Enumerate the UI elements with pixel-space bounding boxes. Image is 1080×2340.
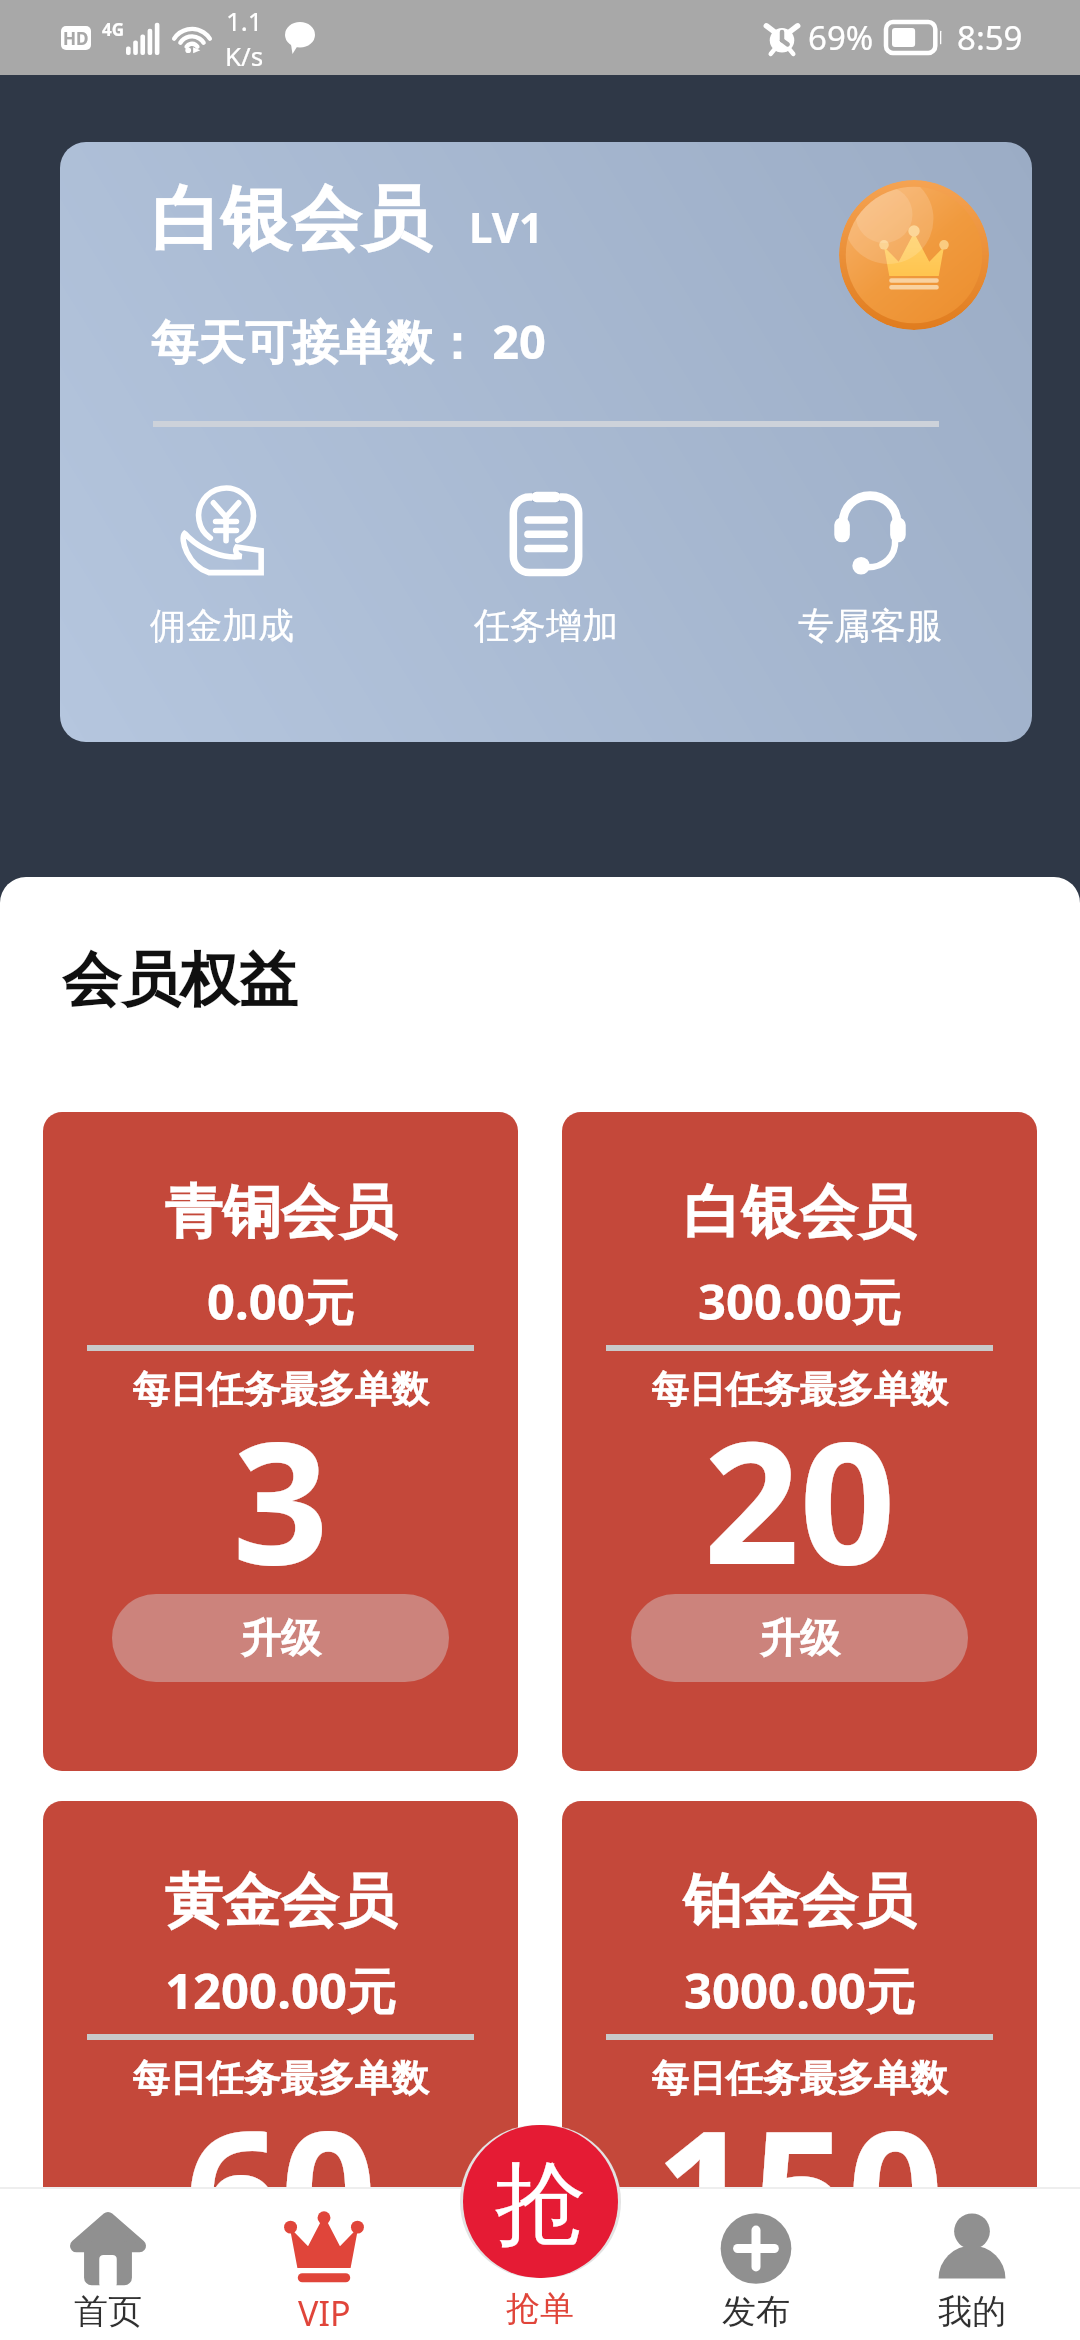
- button[interactable]: 发布: [648, 2187, 864, 2340]
- button[interactable]: 黄金会员: [43, 1801, 518, 2340]
- button[interactable]: 任务增加: [384, 487, 708, 648]
- staticText: 升级: [241, 1613, 321, 1663]
- button[interactable]: 升级: [112, 2283, 449, 2340]
- staticText: 会员权益: [62, 943, 298, 1017]
- staticText: 升级: [760, 1613, 840, 1663]
- staticText: 白银会员: [562, 1176, 1037, 1249]
- staticText: 首页: [74, 2290, 142, 2333]
- staticText: 每日任务最多单数: [43, 1366, 518, 1413]
- button[interactable]: 白银会员: [562, 1112, 1037, 1771]
- staticText: 升级: [760, 2302, 840, 2340]
- staticText: 青铜会员: [43, 1176, 518, 1249]
- button[interactable]: 我的: [864, 2187, 1080, 2340]
- staticText: 任务增加: [474, 603, 618, 648]
- button[interactable]: 首页: [0, 2187, 216, 2340]
- staticText: 专属客服: [798, 603, 942, 648]
- staticText: LV1: [469, 198, 543, 255]
- button[interactable]: 青铜会员: [43, 1112, 518, 1771]
- staticText: 每日任务最多单数: [562, 1366, 1037, 1413]
- staticText: HD: [63, 27, 89, 50]
- staticText: 3: [43, 1384, 518, 1613]
- staticText: 60: [43, 2073, 518, 2302]
- staticText: 抢单: [506, 2287, 574, 2330]
- button[interactable]: 铂金会员: [562, 1801, 1037, 2340]
- staticText: 0.00元: [43, 1268, 518, 1335]
- staticText: 69%: [808, 15, 874, 60]
- staticText: VIP: [298, 2290, 351, 2336]
- button[interactable]: 升级: [112, 1594, 449, 1682]
- button[interactable]: 升级: [631, 1594, 968, 1682]
- button[interactable]: 专属客服: [708, 487, 1032, 648]
- button[interactable]: 白银会员: [60, 142, 1032, 742]
- button[interactable]: 升级: [631, 2283, 968, 2340]
- staticText: 每日任务最多单数: [43, 2055, 518, 2102]
- staticText: 每天可接单数： 20: [151, 309, 546, 373]
- staticText: 铂金会员: [562, 1865, 1037, 1938]
- staticText: 300.00元: [562, 1268, 1037, 1335]
- staticText: 8:59: [957, 15, 1023, 60]
- staticText: K/s: [225, 38, 264, 73]
- button[interactable]: 抢单: [460, 2125, 621, 2278]
- staticText: 3000.00元: [562, 1957, 1037, 2024]
- button[interactable]: 会员等级徽章: [839, 180, 989, 330]
- staticText: 白银会员: [151, 176, 431, 264]
- staticText: 4G: [102, 18, 125, 41]
- staticText: 150: [562, 2073, 1037, 2302]
- staticText: 1200.00元: [43, 1957, 518, 2024]
- button[interactable]: 佣金加成: [60, 487, 384, 648]
- staticText: 每日任务最多单数: [562, 2055, 1037, 2102]
- staticText: 升级: [241, 2302, 321, 2340]
- staticText: 1.1: [226, 3, 263, 38]
- staticText: 20: [562, 1384, 1037, 1613]
- staticText: 发布: [722, 2290, 790, 2333]
- staticText: 佣金加成: [150, 603, 294, 648]
- staticText: 我的: [938, 2290, 1006, 2333]
- staticText: 抢: [495, 2147, 586, 2262]
- staticText: 黄金会员: [43, 1865, 518, 1938]
- button[interactable]: VIP: [216, 2187, 432, 2340]
